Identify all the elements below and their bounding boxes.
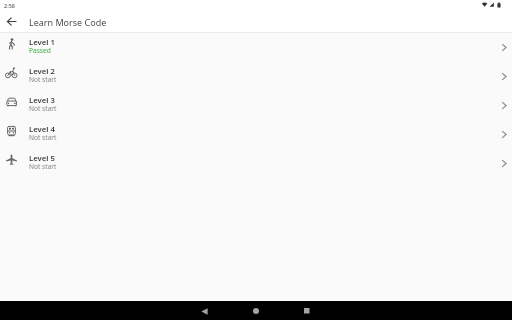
staticText: Not start bbox=[29, 104, 57, 113]
button[interactable] bbox=[249, 304, 263, 318]
button[interactable]: Level 2 bbox=[0, 62, 512, 91]
staticText: Not start bbox=[29, 133, 57, 142]
staticText: Level 3 bbox=[29, 95, 55, 105]
staticText: 2:58 bbox=[4, 2, 15, 9]
staticText: Not start bbox=[29, 75, 57, 84]
staticText: Level 5 bbox=[29, 153, 55, 163]
staticText: Passed bbox=[29, 46, 51, 55]
staticText: Level 1 bbox=[29, 37, 55, 47]
staticText: Level 4 bbox=[29, 124, 55, 134]
button[interactable]: Level 3 bbox=[0, 91, 512, 120]
staticText: Not start bbox=[29, 162, 57, 171]
button[interactable] bbox=[197, 304, 211, 318]
button[interactable]: Level 4 bbox=[0, 120, 512, 149]
button[interactable] bbox=[4, 14, 19, 29]
button[interactable] bbox=[300, 304, 314, 318]
button[interactable]: Level 1 bbox=[0, 33, 512, 62]
staticText: Learn Morse Code bbox=[29, 16, 107, 28]
staticText: Level 2 bbox=[29, 66, 55, 76]
button[interactable]: Level 5 bbox=[0, 149, 512, 178]
